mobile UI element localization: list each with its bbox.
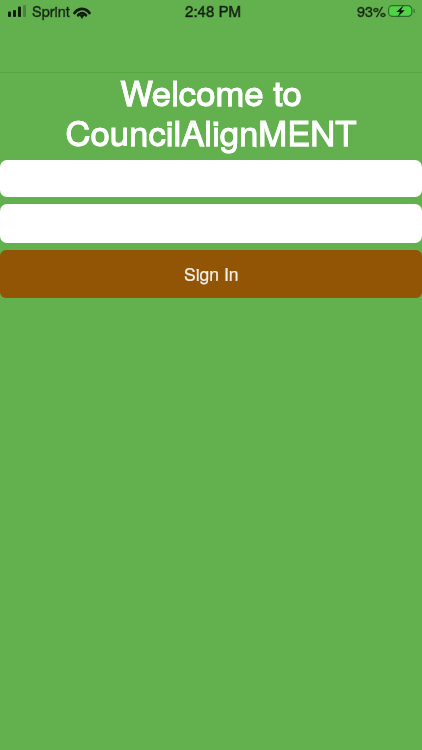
staticText: Sprint — [32, 0, 92, 21]
staticText: 93% — [357, 0, 401, 21]
button[interactable]: Password — [0, 204, 422, 243]
staticText: Sign In — [184, 261, 239, 286]
staticText: 2:48 PM — [2, 0, 422, 21]
staticText: Welcome to CouncilAlignMENT — [0, 66, 422, 156]
staticText: 2:48 PM — [2, 0, 422, 21]
button[interactable]: Username — [0, 160, 422, 197]
staticText: Sprint — [32, 0, 92, 21]
button[interactable]: Sign In — [0, 250, 422, 298]
staticText: Welcome to CouncilAlignMENT — [0, 66, 422, 156]
staticText: 93% — [357, 0, 401, 21]
